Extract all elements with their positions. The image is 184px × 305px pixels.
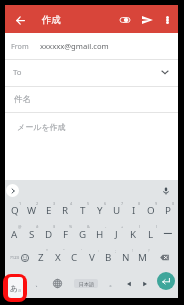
staticText: P [165,204,171,217]
staticText: 0 [172,201,175,206]
button[interactable]: R [57,199,74,222]
button[interactable]: メールを作成 [5,113,178,180]
staticText: 件名 [14,94,31,105]
button[interactable]: G [74,222,91,246]
button[interactable]: Move cursor right [137,269,153,298]
staticText: @ [18,224,22,229]
staticText: F [63,228,69,241]
button[interactable]: ー [159,222,176,246]
button[interactable]: More options [157,10,177,30]
button[interactable]: O [142,199,159,222]
staticText: N [122,251,130,264]
button[interactable]: I [125,199,142,222]
staticText: ? [148,248,150,253]
staticText: ; [115,248,116,253]
button[interactable]: B [100,246,117,269]
staticText: W [27,204,37,217]
button[interactable]: Q [6,199,23,222]
button[interactable]: H [91,222,108,246]
button[interactable]: 作成 [36,5,76,33]
button[interactable]: 件名 [5,87,178,112]
staticText: ( [139,224,141,229]
button[interactable]: Z [32,246,49,269]
button[interactable]: To [5,60,178,86]
button[interactable]: Move cursor left [121,269,137,298]
staticText: J [115,228,118,241]
staticText: 。 [109,279,116,288]
staticText: Q [11,204,19,217]
staticText: : [98,248,99,253]
button[interactable]: Attach file [115,10,135,30]
button[interactable]: N [117,246,134,269]
staticText: # [36,224,39,229]
staticText: Y [97,204,103,217]
button[interactable]: K [125,222,142,246]
button[interactable]: V [83,246,100,269]
staticText: C [71,251,78,264]
staticText: 8 [138,201,141,206]
staticText: D [45,228,53,241]
staticText: O [147,204,155,217]
staticText: A [11,228,18,241]
staticText: + [121,224,124,229]
staticText: L [148,228,154,241]
staticText: V [89,251,95,264]
staticText: 5 [87,201,90,206]
button[interactable]: Backspace [155,246,173,269]
staticText: I [132,204,136,217]
button[interactable]: 、 [30,269,46,298]
button[interactable]: 日本語 [67,269,105,298]
staticText: E [46,204,52,217]
staticText: ) [156,224,158,229]
staticText: From [11,41,29,51]
button[interactable]: U [108,199,125,222]
staticText: あ [10,283,18,293]
staticText: 、 [35,279,42,288]
button[interactable]: Send [137,10,157,30]
staticText: S [29,228,35,241]
staticText: " [63,248,65,253]
button[interactable]: T [74,199,91,222]
staticText: - [105,224,107,229]
button[interactable]: C [66,246,83,269]
button[interactable]: From [5,33,178,59]
button[interactable]: Emoji [17,246,32,269]
button[interactable]: Back [11,11,30,30]
staticText: B [105,251,112,264]
staticText: M [138,251,147,264]
staticText: xxxxxx@gmail.com [40,41,109,51]
button[interactable]: Show suggestions [6,184,19,197]
button[interactable]: Switch input mode [8,277,23,298]
staticText: 9 [155,201,158,206]
staticText: $ [53,224,56,229]
staticText: 1 [19,201,22,206]
staticText: 日本語 [79,281,94,287]
staticText: ! [132,248,133,253]
button[interactable]: Change keyboard language [49,269,65,298]
staticText: T [80,204,86,217]
staticText: 7 [121,201,124,206]
button[interactable]: W [23,199,40,222]
staticText: * [46,248,48,253]
staticText: ' [81,248,82,253]
staticText: a [18,286,22,293]
button[interactable]: A [6,222,23,246]
button[interactable]: L [142,222,159,246]
button[interactable]: ?123 [5,246,24,269]
staticText: 作成 [42,14,61,26]
button[interactable]: S [23,222,40,246]
button[interactable]: J [108,222,125,246]
button[interactable]: M [134,246,151,269]
button[interactable]: Y [91,199,108,222]
button[interactable]: X [49,246,66,269]
button[interactable]: D [40,222,57,246]
button[interactable]: Voice input [159,184,172,197]
button[interactable]: Enter [153,270,179,292]
button[interactable]: E [40,199,57,222]
button[interactable]: P [159,199,176,222]
button[interactable]: F [57,222,74,246]
staticText: % [69,224,73,229]
staticText: X [55,251,61,264]
staticText: To [13,67,22,78]
